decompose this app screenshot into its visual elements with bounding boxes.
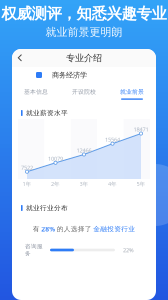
staticText: 就业行业分布 <box>26 204 68 212</box>
staticText: 12466 <box>76 146 91 154</box>
button[interactable]: 开设院校 <box>60 83 108 103</box>
staticText: 5年 <box>136 180 145 188</box>
staticText: 10079 <box>48 155 63 162</box>
staticText: 基本信息 <box>24 88 48 95</box>
staticText: 的人选择了 <box>57 225 92 233</box>
staticText: 开设院校 <box>72 88 96 95</box>
button[interactable]: 返回 <box>12 49 28 67</box>
staticText: 权威测评，知悉兴趣专业 <box>1 4 166 23</box>
staticText: 18471 <box>133 125 148 133</box>
staticText: 7522 <box>21 164 33 171</box>
staticText: 专业介绍 <box>66 52 102 64</box>
button[interactable]: 基本信息 <box>12 83 60 103</box>
staticText: 1年 <box>22 180 31 188</box>
staticText: 22% <box>123 246 134 254</box>
button[interactable]: 就业前景 <box>108 83 156 103</box>
staticText: 就业薪资水平 <box>26 109 68 117</box>
staticText: 2年 <box>51 180 60 188</box>
staticText: 28% <box>41 224 55 234</box>
staticText: 就业前景更明朗 <box>45 25 122 39</box>
staticText: 3年 <box>79 180 88 188</box>
staticText: 商务经济学 <box>52 70 87 80</box>
staticText: 有 <box>33 225 40 233</box>
staticText: 就业前景 <box>120 88 144 95</box>
staticText: 15564 <box>105 136 120 143</box>
staticText: 金融投资行业 <box>93 225 135 233</box>
staticText: 咨询服务 <box>25 243 43 257</box>
staticText: 4年 <box>108 180 117 188</box>
